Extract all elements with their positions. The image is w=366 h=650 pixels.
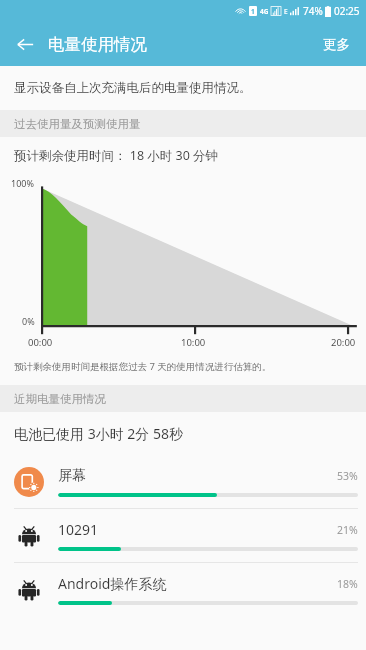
staticText: 10291 — [58, 520, 337, 539]
staticText: 10:00 — [181, 336, 206, 349]
staticText: 18% — [337, 577, 358, 591]
staticText: 74% — [303, 4, 323, 18]
staticText: 00:00 — [28, 336, 53, 349]
staticText: 预计剩余使用时间是根据您过去 7 天的使用情况进行估算的。 — [14, 360, 272, 373]
button[interactable]: 10291 — [0, 509, 366, 562]
staticText: 0% — [22, 315, 35, 327]
staticText: E — [284, 7, 288, 16]
staticText: 02:25 — [334, 4, 360, 18]
button[interactable]: Android操作系统 — [0, 563, 366, 616]
staticText: 20:00 — [331, 336, 356, 349]
staticText: 电池已使用 3小时 2分 58秒 — [14, 424, 183, 443]
staticText: 1 — [251, 7, 255, 16]
staticText: 屏幕 — [58, 467, 337, 485]
button[interactable]: Back — [8, 27, 42, 61]
staticText: Android操作系统 — [58, 574, 337, 593]
staticText: 4G — [260, 7, 269, 16]
staticText: 100% — [11, 177, 34, 189]
staticText: 显示设备自上次充满电后的电量使用情况。 — [14, 80, 252, 96]
staticText: 21% — [337, 523, 358, 537]
staticText: 53% — [337, 469, 358, 483]
staticText: 过去使用量及预测使用量 — [14, 117, 141, 131]
button[interactable]: 更多 — [311, 30, 362, 59]
staticText: 电量使用情况 — [48, 34, 147, 55]
staticText: 预计剩余使用时间： 18 小时 30 分钟 — [14, 147, 219, 164]
staticText: 更多 — [323, 36, 350, 53]
button[interactable]: 屏幕 — [0, 455, 366, 508]
staticText: 近期电量使用情况 — [14, 392, 106, 406]
